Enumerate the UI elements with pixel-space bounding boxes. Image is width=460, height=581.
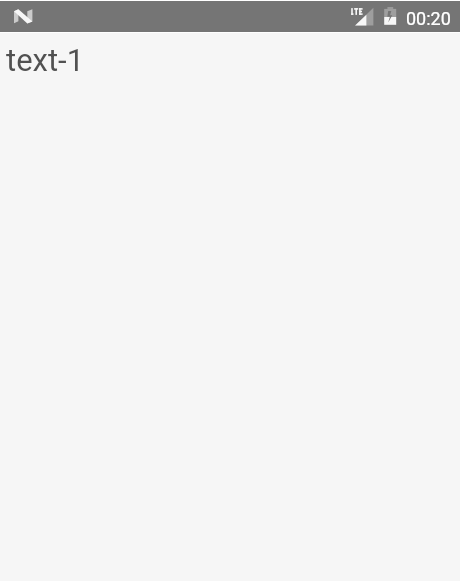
staticText: text-1 <box>6 42 85 78</box>
other: LTE signal strength <box>348 4 378 28</box>
other: Battery charging <box>382 5 400 27</box>
button[interactable]: Android Nougat <box>8 4 38 28</box>
staticText: 00:20 <box>406 8 451 29</box>
